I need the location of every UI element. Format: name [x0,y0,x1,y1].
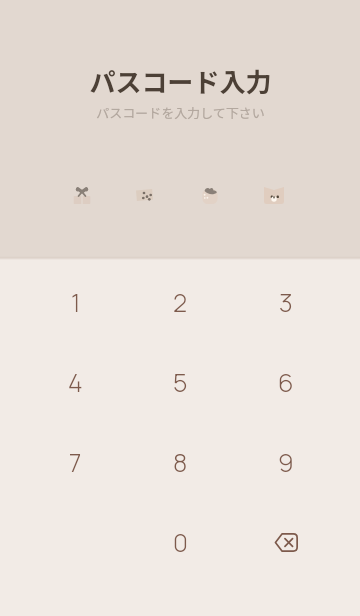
staticText: 4 [68,365,83,399]
staticText: パスコード入力 [89,62,272,100]
button[interactable]: 2 [128,262,233,342]
button[interactable]: 5 [128,342,233,422]
button[interactable]: 4 [23,342,128,422]
button[interactable]: 9 [233,422,338,502]
button[interactable]: 1 [23,262,128,342]
button[interactable]: 3 [233,262,338,342]
staticText: 0 [173,525,188,559]
staticText: 2 [173,285,188,319]
button[interactable]: Delete [233,502,338,582]
staticText: 5 [173,365,188,399]
staticText: 3 [279,285,293,319]
button[interactable]: 8 [128,422,233,502]
button[interactable]: 7 [23,422,128,502]
staticText: 8 [173,445,188,479]
staticText: 9 [278,445,294,479]
staticText: 1 [71,285,81,319]
staticText: 7 [69,445,82,479]
staticText: パスコードを入力して下さい [96,103,265,122]
button[interactable]: 0 [128,502,233,582]
staticText: 6 [278,365,294,399]
button[interactable]: 6 [233,342,338,422]
